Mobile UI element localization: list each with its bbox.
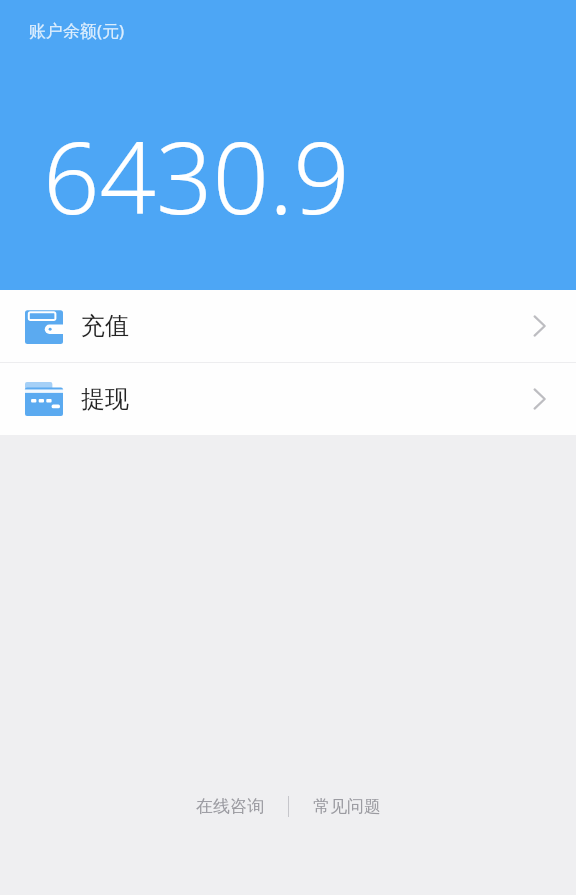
staticText: 账户余额(元)	[29, 19, 125, 42]
button[interactable]: 常见问题	[305, 790, 389, 823]
other: 提现	[25, 382, 63, 416]
staticText: 充值	[81, 311, 129, 341]
button[interactable]: 充值	[0, 290, 576, 362]
staticText: 常见问题	[313, 796, 381, 817]
other: 充值	[25, 308, 63, 344]
staticText: 6430.9	[43, 108, 350, 243]
button[interactable]: 在线咨询	[188, 790, 272, 823]
button[interactable]: 提现	[0, 363, 576, 435]
staticText: 在线咨询	[196, 796, 264, 817]
staticText: 提现	[81, 384, 129, 414]
